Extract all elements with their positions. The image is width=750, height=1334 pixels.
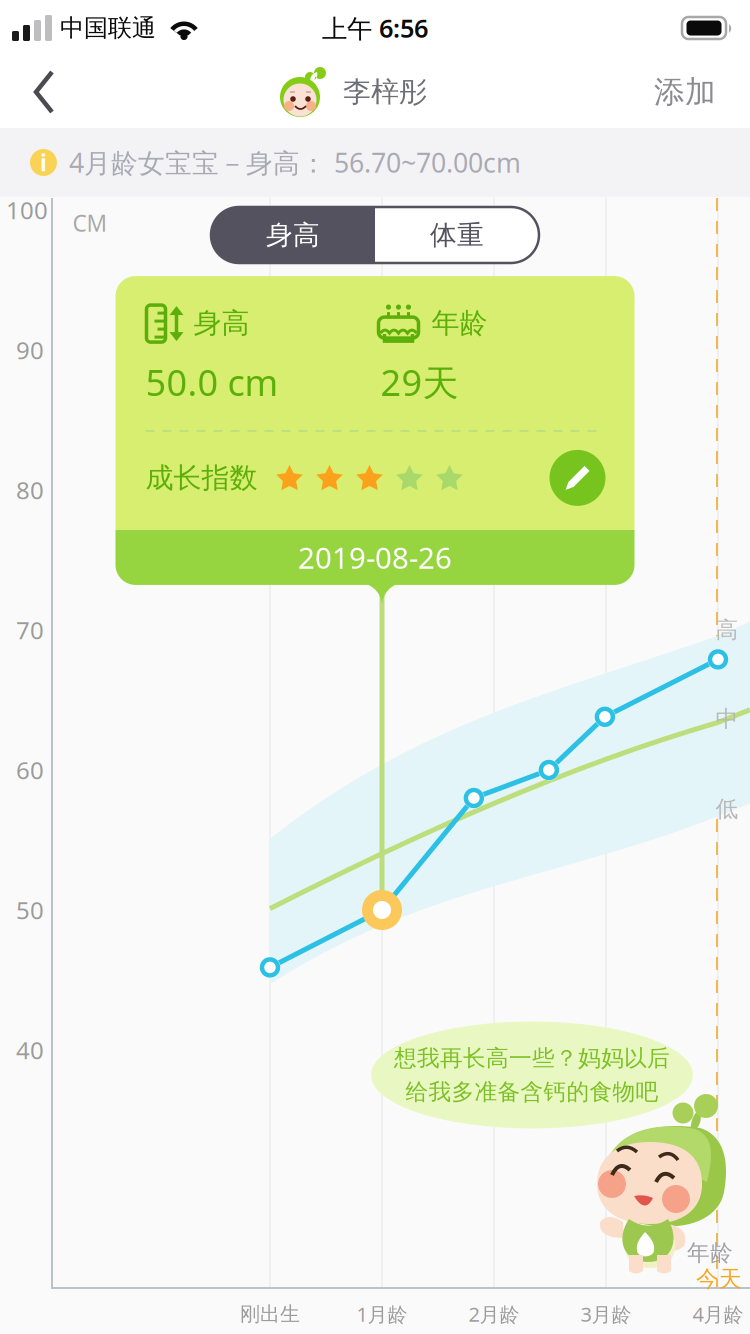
staticText: 90 <box>16 334 44 366</box>
staticText: 2019-08-26 <box>298 538 452 577</box>
button[interactable]: 身高 <box>211 207 375 263</box>
staticText: i <box>40 147 47 177</box>
staticText: CM <box>72 208 107 238</box>
staticText: 刚出生 <box>240 1302 300 1326</box>
staticText: 60 <box>16 754 44 786</box>
staticText: 70 <box>16 614 44 646</box>
staticText: 80 <box>16 474 44 506</box>
staticText: 身高 <box>266 219 320 251</box>
staticText: 上午 6:56 <box>322 11 428 45</box>
staticText: 今天 <box>696 1265 742 1293</box>
staticText: 1月龄 <box>356 1301 407 1327</box>
staticText: 低 <box>715 795 738 823</box>
staticText: 4月龄女宝宝－身高： 56.70~70.00cm <box>69 145 521 180</box>
staticText: 身高 <box>193 306 249 340</box>
staticText: 李梓彤 <box>343 75 427 109</box>
staticText: 中国联通 <box>60 13 156 43</box>
staticText: 50.0 cm <box>145 358 278 406</box>
staticText: 2月龄 <box>468 1301 519 1327</box>
button[interactable]: 体重 <box>375 207 539 263</box>
staticText: 成长指数 <box>145 461 257 495</box>
staticText: 想我再长高一些？妈妈以后 <box>394 1044 670 1072</box>
staticText: 4月龄 <box>692 1301 743 1327</box>
staticText: 100 <box>6 194 48 226</box>
staticText: 年龄 <box>687 1239 733 1267</box>
staticText: 添加 <box>654 73 716 111</box>
staticText: 50 <box>16 894 44 926</box>
staticText: 29天 <box>380 358 458 406</box>
staticText: 给我多准备含钙的食物吧 <box>405 1078 658 1106</box>
staticText: 40 <box>16 1034 44 1066</box>
staticText: 3月龄 <box>580 1301 631 1327</box>
staticText: 中 <box>715 705 738 733</box>
button[interactable]: 添加 <box>644 56 726 128</box>
staticText: 体重 <box>430 219 484 251</box>
staticText: 年龄 <box>431 306 487 340</box>
staticText: 高 <box>715 616 738 644</box>
button[interactable]: 返回 <box>14 56 74 128</box>
button[interactable]: 编辑 <box>549 450 605 506</box>
